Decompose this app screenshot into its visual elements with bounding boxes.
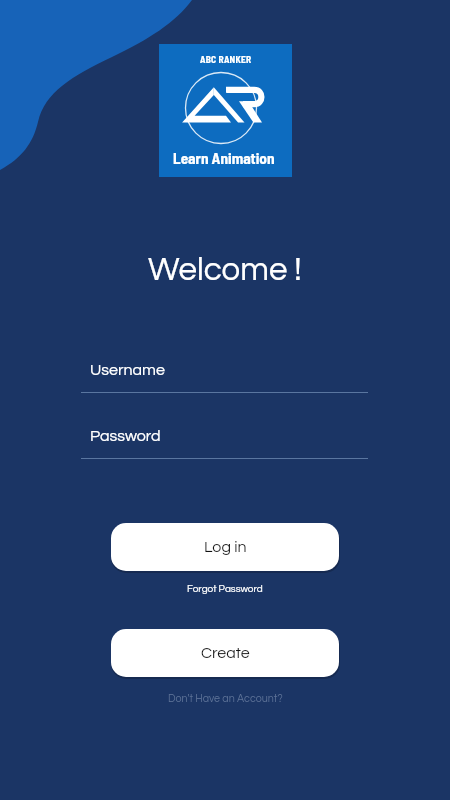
staticText: Create [201,645,250,661]
button[interactable]: Forgot Password [181,582,269,596]
staticText: Log in [204,539,247,555]
button[interactable]: Create [111,629,339,677]
button[interactable]: Password [81,428,368,459]
button[interactable]: Log in [111,523,339,571]
button[interactable]: Don't Have an Account? [162,691,289,706]
staticText: Password [90,428,161,444]
button[interactable]: Username [81,362,368,393]
staticText: ABC RANKER [200,53,252,64]
staticText: Learn Animation [173,149,275,167]
staticText: Username [90,362,165,378]
staticText: Welcome ! [148,253,302,287]
